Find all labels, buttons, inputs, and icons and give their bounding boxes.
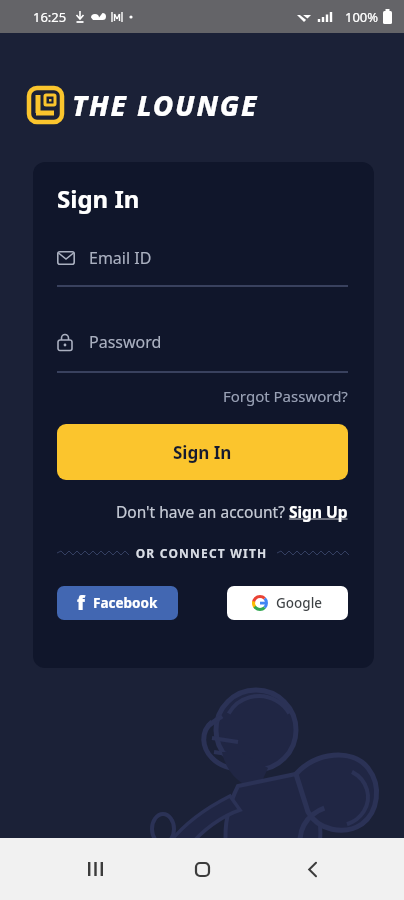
button[interactable] <box>73 838 117 900</box>
staticText: 100% <box>345 8 379 26</box>
staticText: Google <box>276 594 323 612</box>
button[interactable] <box>180 838 224 900</box>
button[interactable]: Forgot Password? <box>223 386 348 406</box>
staticText: Sign In <box>173 441 232 464</box>
staticText: OR CONNECT WITH <box>127 545 277 561</box>
button[interactable]: Don't have an account? Sign Up <box>116 501 348 522</box>
staticText: f <box>77 590 85 616</box>
button[interactable]: Email ID <box>57 247 348 287</box>
button[interactable]: Google <box>227 586 348 620</box>
staticText: Email ID <box>89 247 152 269</box>
staticText: 16:25 <box>33 8 67 26</box>
staticText: Password <box>89 331 162 353</box>
button[interactable]: f <box>57 586 178 620</box>
staticText: Facebook <box>93 594 158 612</box>
button[interactable] <box>290 838 334 900</box>
button[interactable]: Sign In <box>57 424 348 480</box>
staticText: THE LOUNGE <box>72 86 259 124</box>
button[interactable]: Password <box>57 331 348 373</box>
staticText: Sign In <box>57 182 140 215</box>
